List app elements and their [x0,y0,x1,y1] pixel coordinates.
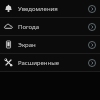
other: Open Экран [88,41,96,49]
staticText: Погода [18,23,88,31]
button[interactable]: Notifications [0,0,100,17]
other: Notifications [4,4,13,13]
other: Open Погода [88,23,96,31]
button[interactable]: Weather [0,18,100,35]
other: Display [4,40,13,49]
staticText: Уведомления [18,5,88,13]
other: Open Уведомления [88,5,96,13]
button[interactable]: Advanced [0,54,100,71]
staticText: Расширенные [18,59,88,67]
other: Advanced [4,58,13,67]
button[interactable]: Display [0,36,100,53]
other: Weather [4,22,13,31]
staticText: Экран [18,41,88,49]
other: Open Расширенные [88,59,96,67]
